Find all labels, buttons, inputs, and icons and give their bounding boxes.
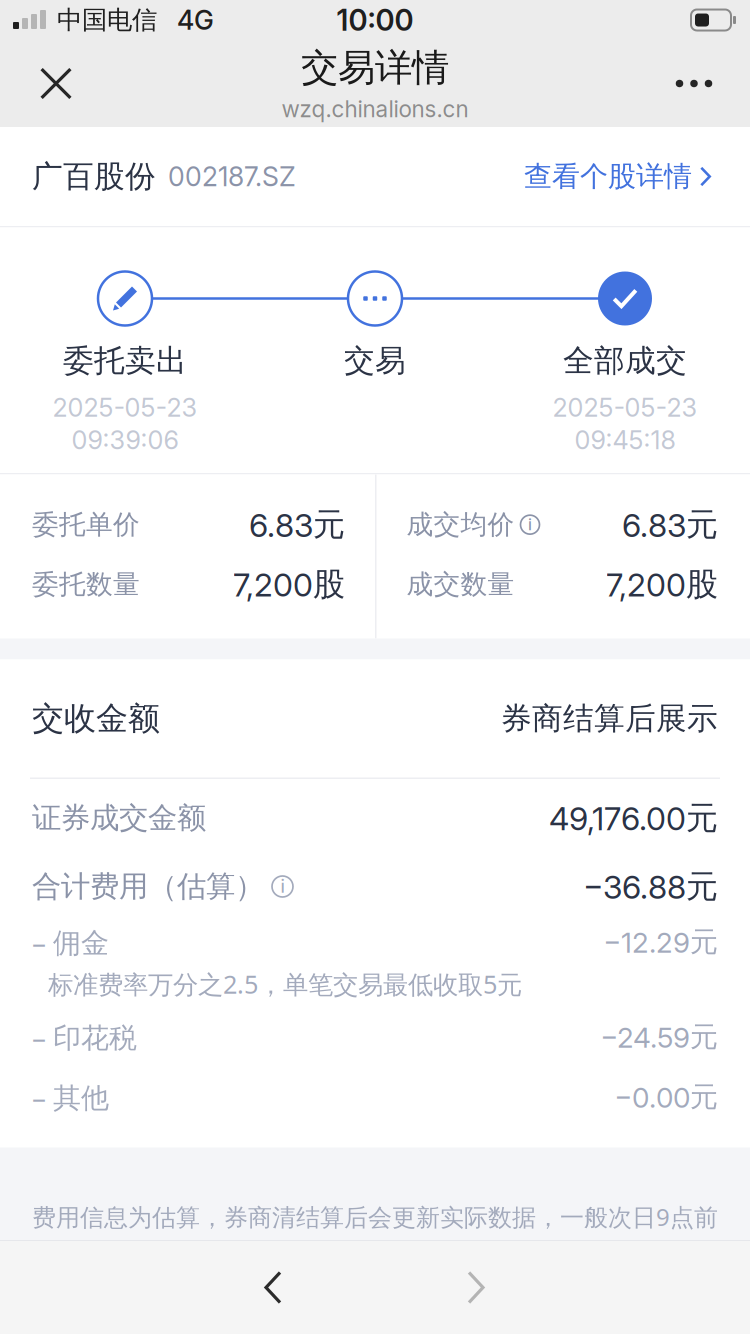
staticText: 查看个股详情 xyxy=(524,159,692,194)
button[interactable]: 后退 xyxy=(225,1241,321,1334)
staticText: −36.88元 xyxy=(583,866,718,907)
button[interactable]: 关闭 xyxy=(13,48,99,118)
staticText: −12.29元 xyxy=(603,924,718,960)
button[interactable]: 前进 xyxy=(428,1241,524,1334)
staticText: 委托单价 xyxy=(32,508,140,541)
staticText: −24.59元 xyxy=(600,1019,718,1055)
staticText: 49,176.00元 xyxy=(549,798,718,838)
staticText: 广百股份 xyxy=(32,157,156,196)
staticText: – 佣金 xyxy=(32,923,109,961)
staticText: 2025-05-23 xyxy=(52,392,197,423)
staticText: i xyxy=(528,515,532,534)
staticText: 交易 xyxy=(344,341,406,380)
staticText: 合计费用（估算） xyxy=(32,868,264,905)
staticText: 全部成交 xyxy=(563,341,687,380)
staticText: 委托卖出 xyxy=(63,341,187,380)
staticText: 09:39:06 xyxy=(71,425,178,455)
staticText: 6.83元 xyxy=(622,504,718,545)
staticText: wzq.chinalions.cn xyxy=(281,95,468,123)
staticText: – 印花税 xyxy=(32,1018,137,1056)
staticText: 成交数量 xyxy=(406,567,514,601)
staticText: 6.83元 xyxy=(249,504,345,545)
staticText: 交收金额 xyxy=(32,698,160,739)
staticText: 委托数量 xyxy=(32,567,140,601)
staticText: −0.00元 xyxy=(614,1079,718,1115)
staticText: i xyxy=(280,876,284,897)
staticText: 证券成交金额 xyxy=(32,799,206,836)
staticText: 费用信息为估算，券商清结算后会更新实际数据，一般次日9点前 xyxy=(32,1200,718,1233)
staticText: 中国电信 xyxy=(57,4,157,36)
staticText: 002187.SZ xyxy=(168,160,296,193)
staticText: – 其他 xyxy=(32,1078,109,1116)
staticText: 交易详情 xyxy=(301,44,449,91)
staticText: 2025-05-23 xyxy=(552,392,697,423)
staticText: 标准费率万分之2.5，单笔交易最低收取5元 xyxy=(48,967,522,1001)
button[interactable]: 更多 xyxy=(651,48,737,118)
staticText: 7,200股 xyxy=(606,564,718,604)
staticText: 4G xyxy=(177,4,214,36)
staticText: 成交均价 xyxy=(406,508,514,541)
staticText: 7,200股 xyxy=(233,564,345,604)
staticText: 券商结算后展示 xyxy=(501,699,718,738)
staticText: 09:45:18 xyxy=(574,425,675,455)
button[interactable]: 查看个股详情 xyxy=(524,147,718,206)
staticText: 10:00 xyxy=(336,2,413,38)
